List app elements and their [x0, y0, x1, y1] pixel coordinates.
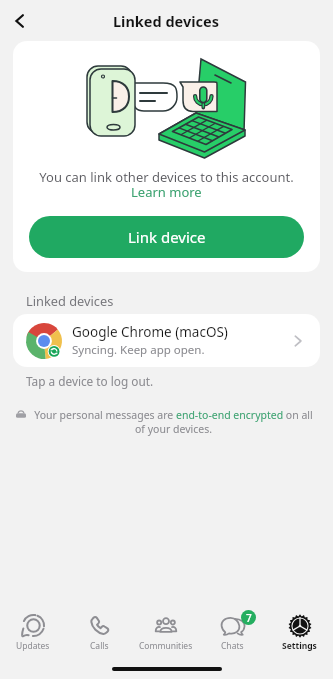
button[interactable]: Settings — [266, 609, 333, 657]
other: Open device details — [290, 333, 306, 349]
button[interactable]: Communities — [132, 609, 199, 657]
button[interactable]: Updates — [0, 609, 66, 657]
button[interactable]: Learn more — [131, 183, 202, 201]
button[interactable]: 7 — [199, 609, 266, 657]
staticText: 7 — [246, 611, 252, 625]
staticText: Tap a device to log out. — [26, 373, 154, 389]
staticText: Google Chrome (macOS) — [72, 323, 228, 341]
staticText: Linked devices — [113, 11, 220, 31]
staticText: Link device — [128, 227, 206, 247]
button[interactable]: Back — [4, 5, 36, 37]
staticText: Your personal messages are end-to-end en… — [30, 408, 317, 436]
staticText: Linked devices — [26, 292, 114, 309]
staticText: You can link other devices to this accou… — [39, 168, 294, 186]
staticText: Chats — [221, 640, 244, 652]
button[interactable]: Calls — [66, 609, 132, 657]
staticText: Calls — [90, 640, 109, 652]
staticText: Updates — [16, 640, 50, 652]
staticText: Communities — [139, 640, 193, 652]
staticText: Syncing. Keep app open. — [72, 342, 205, 358]
staticText: Settings — [282, 640, 317, 652]
button[interactable]: Link device — [29, 216, 304, 258]
button[interactable]: Google Chrome (macOS) — [13, 314, 320, 367]
